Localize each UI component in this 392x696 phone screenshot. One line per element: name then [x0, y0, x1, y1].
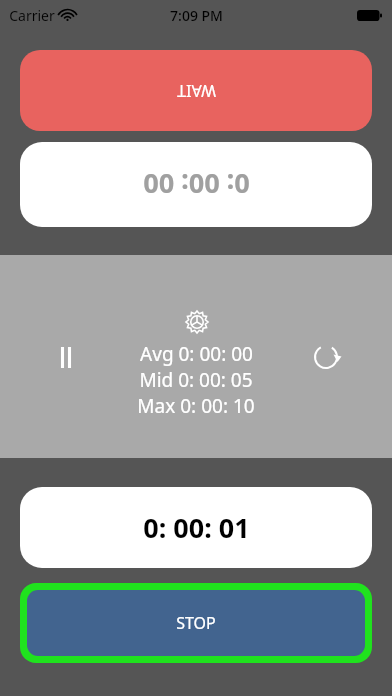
button[interactable]: WAIT [20, 50, 372, 131]
button[interactable]: STOP [20, 583, 372, 663]
button[interactable]: Settings [175, 300, 219, 344]
button[interactable]: 0: 00: 00 [20, 142, 372, 227]
button[interactable]: 0: 00: 01 [20, 487, 372, 568]
staticText: Carrier [9, 6, 55, 25]
button[interactable]: Pause [44, 335, 88, 379]
staticText: WAIT [177, 80, 216, 102]
staticText: STOP [176, 612, 216, 634]
staticText: Avg 0: 00: 00 [140, 341, 253, 367]
staticText: Mid 0: 00: 05 [139, 367, 253, 393]
button[interactable]: Reset [304, 335, 348, 379]
staticText: 7:09 PM [170, 6, 223, 25]
staticText: 0: 00: 01 [143, 509, 250, 546]
staticText: 0: 00: 00 [143, 166, 250, 203]
staticText: Max 0: 00: 10 [137, 393, 255, 419]
